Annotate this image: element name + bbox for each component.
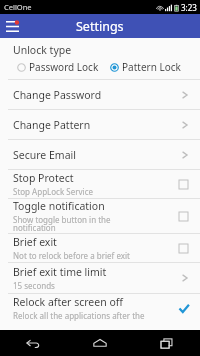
button[interactable]: Stop Protect — [0, 170, 200, 198]
staticText: Secure Email — [13, 148, 76, 162]
staticText: Brief exit — [13, 235, 57, 249]
staticText: Settings — [76, 18, 124, 35]
staticText: 15 seconds — [13, 280, 55, 291]
staticText: Change Pattern — [13, 118, 91, 132]
staticText: CellOne — [4, 2, 32, 12]
button[interactable]: Secure Email — [0, 140, 200, 169]
staticText: Toggle notification — [13, 199, 105, 213]
staticText: Password Lock — [29, 60, 99, 74]
staticText: 3:23 — [181, 2, 197, 13]
staticText: Stop AppLock Service — [13, 186, 93, 197]
staticText: Change Password — [13, 88, 102, 102]
staticText: Show toggle button in the notification — [13, 214, 111, 233]
button[interactable]: Brief exit time limit — [0, 263, 200, 293]
button[interactable]: Brief exit — [0, 234, 200, 262]
staticText: Unlock type — [13, 43, 72, 57]
staticText: Brief exit time limit — [13, 265, 107, 279]
staticText: Stop Protect — [13, 171, 74, 185]
button[interactable]: Open navigation menu — [0, 14, 24, 38]
button[interactable]: Change Password — [0, 80, 200, 109]
button[interactable]: Back — [0, 330, 66, 356]
staticText: Relock all the applications after the — [13, 310, 145, 321]
button[interactable]: Password Lock — [17, 60, 99, 74]
button[interactable]: Recent apps — [133, 330, 200, 356]
button[interactable]: Change Pattern — [0, 110, 200, 139]
staticText: Not to relock before a brief exit — [13, 250, 130, 261]
button[interactable]: Home — [66, 330, 133, 356]
button[interactable]: Toggle notification — [0, 199, 200, 233]
staticText: Pattern Lock — [122, 60, 181, 74]
button[interactable]: Relock after screen off — [0, 294, 200, 322]
button[interactable]: Pattern Lock — [110, 60, 181, 74]
staticText: Relock after screen off — [13, 295, 124, 309]
